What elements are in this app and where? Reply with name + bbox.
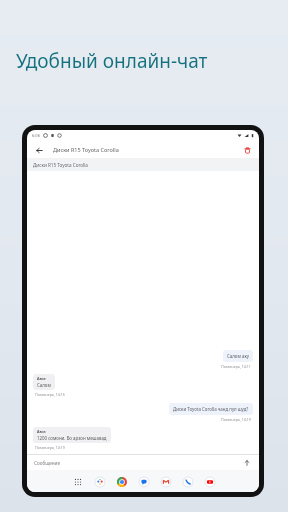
staticText: Азиз xyxy=(37,429,46,434)
staticText: Сообщение xyxy=(34,460,60,466)
button[interactable]: Delete chat xyxy=(241,144,253,156)
staticText: 1200 сомони. Бо арзон мешавад xyxy=(37,435,107,441)
button[interactable]: Азиз xyxy=(33,427,111,443)
staticText: Диски R15 Toyota Corolla xyxy=(53,146,119,153)
staticText: Салом аку xyxy=(227,353,249,359)
button[interactable]: Messages xyxy=(136,474,151,489)
staticText: Позавчера, 14:11 xyxy=(221,364,251,369)
staticText: Позавчера, 14:19 xyxy=(35,445,65,450)
staticText: Позавчера, 14:19 xyxy=(221,417,251,422)
button[interactable]: Send xyxy=(242,458,252,468)
button[interactable]: Сообщение xyxy=(27,455,259,470)
button[interactable]: Phone xyxy=(180,474,195,489)
staticText: Азиз xyxy=(37,376,46,381)
staticText: Диски R15 Toyota Corolla xyxy=(33,162,88,168)
button[interactable]: Диски R15 Toyota Corolla xyxy=(27,158,259,171)
button[interactable]: Assistant xyxy=(92,474,107,489)
button[interactable]: Back xyxy=(33,144,45,156)
staticText: Диски Toyota Corolla чанд пул шуд? xyxy=(173,406,249,412)
staticText: Удобный онлайн-чат xyxy=(16,48,208,74)
button[interactable]: Диски Toyota Corolla чанд пул шуд? xyxy=(169,403,253,415)
staticText: Салом xyxy=(37,382,51,388)
button[interactable]: Азиз xyxy=(33,374,55,390)
button[interactable]: Gmail xyxy=(158,474,173,489)
button[interactable]: YouTube xyxy=(202,474,217,489)
button[interactable]: Салом аку xyxy=(223,350,253,362)
button[interactable]: All apps xyxy=(70,474,85,489)
staticText: 6:06 xyxy=(32,133,40,138)
staticText: Позавчера, 14:16 xyxy=(35,392,65,397)
button[interactable]: Chrome xyxy=(114,474,129,489)
